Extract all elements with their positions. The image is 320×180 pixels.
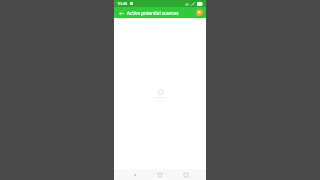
button[interactable]: Account [196,9,203,16]
staticText: 10:48 [117,1,128,6]
button[interactable]: Back [117,9,125,17]
button[interactable]: Back [130,170,140,180]
staticText: Active potential sources [127,10,194,16]
staticText: P [198,10,201,15]
button[interactable]: Recents [181,170,191,180]
button[interactable]: Home [155,170,165,180]
